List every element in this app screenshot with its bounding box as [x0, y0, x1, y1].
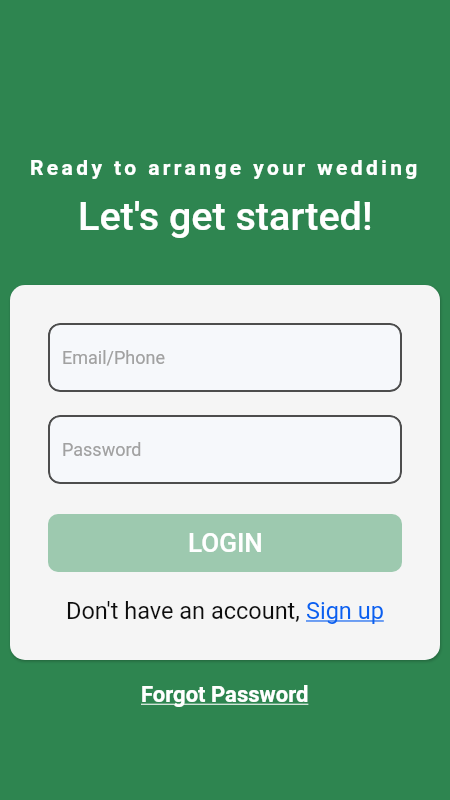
button[interactable]: Forgot Password [141, 682, 309, 708]
staticText: Email/Phone [62, 347, 166, 368]
button[interactable]: Email/Phone [48, 323, 402, 392]
staticText: Don't have an account, [66, 597, 306, 625]
button[interactable]: Password [48, 415, 402, 484]
staticText: Let's get started! [78, 193, 373, 239]
staticText: Sign up [306, 597, 384, 625]
staticText: Ready to arrange your wedding [30, 156, 421, 181]
staticText: Forgot Password [141, 682, 309, 708]
button[interactable]: Sign up [306, 597, 384, 625]
staticText: Password [62, 439, 142, 460]
button[interactable]: LOGIN [48, 514, 402, 572]
staticText: LOGIN [188, 528, 263, 558]
